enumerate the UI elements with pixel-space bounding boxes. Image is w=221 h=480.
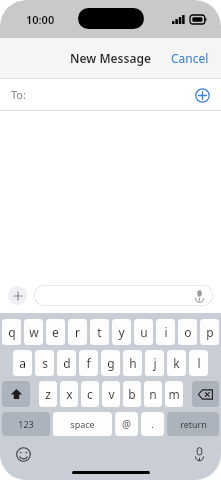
- staticText: m: [168, 386, 180, 402]
- staticText: q: [8, 324, 16, 340]
- staticText: k: [173, 355, 180, 371]
- button[interactable]: Emoji: [14, 445, 32, 463]
- staticText: return: [180, 418, 207, 430]
- button[interactable]: @: [115, 412, 138, 436]
- button[interactable]: e: [46, 319, 65, 345]
- staticText: To:: [11, 87, 26, 102]
- staticText: e: [52, 324, 59, 340]
- staticText: j: [153, 355, 157, 371]
- button[interactable]: Dictate: [34, 285, 213, 306]
- button[interactable]: p: [200, 319, 219, 345]
- staticText: b: [128, 386, 136, 402]
- button[interactable]: Add contact: [191, 84, 213, 106]
- button[interactable]: z: [39, 381, 57, 407]
- button[interactable]: x: [60, 381, 78, 407]
- button[interactable]: 123: [2, 412, 50, 436]
- staticText: .: [151, 418, 154, 430]
- staticText: x: [66, 386, 73, 402]
- staticText: y: [118, 324, 125, 340]
- staticText: Cancel: [171, 50, 209, 66]
- staticText: g: [107, 355, 115, 371]
- staticText: t: [97, 324, 102, 340]
- staticText: i: [164, 324, 168, 340]
- button[interactable]: y: [112, 319, 131, 345]
- staticText: @: [122, 417, 131, 431]
- button[interactable]: q: [2, 319, 21, 345]
- staticText: space: [70, 418, 95, 430]
- button[interactable]: v: [102, 381, 120, 407]
- button[interactable]: a: [13, 350, 32, 376]
- button[interactable]: w: [24, 319, 43, 345]
- staticText: l: [197, 355, 201, 371]
- button[interactable]: Add attachment: [8, 286, 27, 305]
- button[interactable]: c: [81, 381, 99, 407]
- staticText: h: [129, 355, 137, 371]
- button[interactable]: To:: [0, 79, 221, 110]
- button[interactable]: s: [35, 350, 54, 376]
- staticText: New Message: [70, 50, 151, 66]
- staticText: s: [42, 355, 48, 371]
- button[interactable]: space: [53, 412, 112, 436]
- staticText: w: [29, 324, 39, 340]
- staticText: 123: [18, 418, 34, 430]
- other: Dictate: [193, 289, 206, 302]
- button[interactable]: Cancel: [159, 42, 221, 74]
- staticText: p: [206, 324, 214, 340]
- button[interactable]: u: [134, 319, 153, 345]
- button[interactable]: g: [101, 350, 120, 376]
- button[interactable]: return: [167, 412, 219, 436]
- button[interactable]: h: [123, 350, 142, 376]
- staticText: u: [140, 324, 148, 340]
- staticText: r: [75, 324, 80, 340]
- button[interactable]: n: [144, 381, 162, 407]
- button[interactable]: i: [156, 319, 175, 345]
- button[interactable]: Dictation: [191, 446, 207, 462]
- staticText: v: [108, 386, 115, 402]
- button[interactable]: j: [145, 350, 164, 376]
- staticText: o: [184, 324, 192, 340]
- button[interactable]: Shift: [2, 381, 30, 407]
- button[interactable]: k: [167, 350, 186, 376]
- button[interactable]: m: [165, 381, 183, 407]
- button[interactable]: d: [57, 350, 76, 376]
- button[interactable]: Backspace: [192, 381, 219, 407]
- staticText: a: [19, 355, 26, 371]
- button[interactable]: l: [189, 350, 208, 376]
- staticText: f: [86, 355, 91, 371]
- button[interactable]: f: [79, 350, 98, 376]
- button[interactable]: b: [123, 381, 141, 407]
- button[interactable]: o: [178, 319, 197, 345]
- button[interactable]: r: [68, 319, 87, 345]
- staticText: 10:00: [26, 12, 55, 27]
- staticText: d: [63, 355, 71, 371]
- staticText: z: [45, 386, 51, 402]
- staticText: c: [87, 386, 93, 402]
- button[interactable]: .: [141, 412, 164, 436]
- button[interactable]: t: [90, 319, 109, 345]
- staticText: n: [149, 386, 157, 402]
